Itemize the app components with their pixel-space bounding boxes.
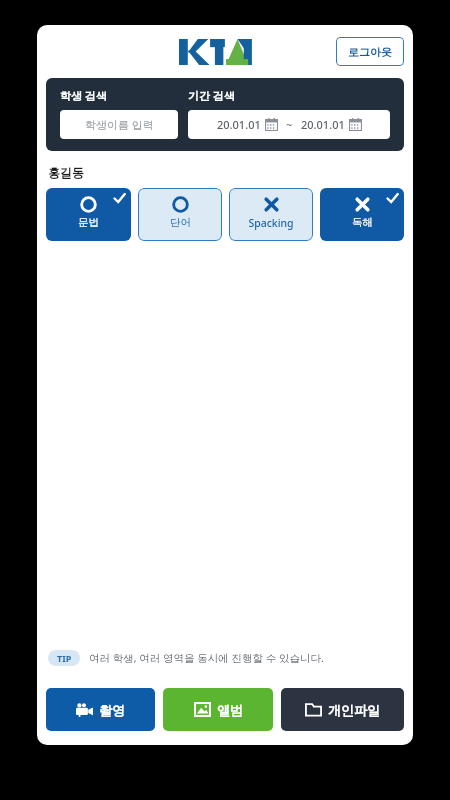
staticText: 앨범 xyxy=(217,702,243,718)
button[interactable]: 앨범 xyxy=(163,688,273,731)
staticText: 20.01.01 xyxy=(217,117,261,132)
button[interactable]: 학생이름 입력 xyxy=(60,110,178,139)
staticText: 개인파일 xyxy=(328,702,380,718)
staticText: Spacking xyxy=(248,216,294,230)
staticText: 홍길동 xyxy=(48,165,84,180)
other: 촬영 xyxy=(76,701,93,718)
staticText: 문법 xyxy=(78,216,99,229)
button[interactable]: 촬영 xyxy=(46,688,155,731)
staticText: 촬영 xyxy=(99,702,125,718)
staticText: 로그아웃 xyxy=(348,45,392,59)
staticText: 기간 검색 xyxy=(188,88,235,103)
staticText: 학생이름 입력 xyxy=(85,117,154,132)
staticText: 독해 xyxy=(352,216,373,229)
staticText: 단어 xyxy=(170,216,191,229)
button[interactable]: 단어 xyxy=(138,188,222,241)
other: 앨범 xyxy=(194,701,211,718)
staticText: 여러 학생, 여러 영역을 동시에 진행할 수 있습니다. xyxy=(89,651,324,665)
staticText: ~ xyxy=(286,117,293,132)
other: 개인파일 xyxy=(305,701,322,718)
other: KTA logo xyxy=(179,39,253,65)
button[interactable]: 로그아웃 xyxy=(336,37,404,66)
staticText: 학생 검색 xyxy=(60,88,107,103)
staticText: TIP xyxy=(57,652,72,664)
staticText: 20.01.01 xyxy=(301,117,345,132)
button[interactable]: 20.01.01 xyxy=(188,110,390,139)
button[interactable]: 개인파일 xyxy=(281,688,404,731)
button[interactable]: 문법 xyxy=(46,188,131,241)
button[interactable]: Spacking xyxy=(229,188,313,241)
button[interactable]: 독해 xyxy=(320,188,404,241)
